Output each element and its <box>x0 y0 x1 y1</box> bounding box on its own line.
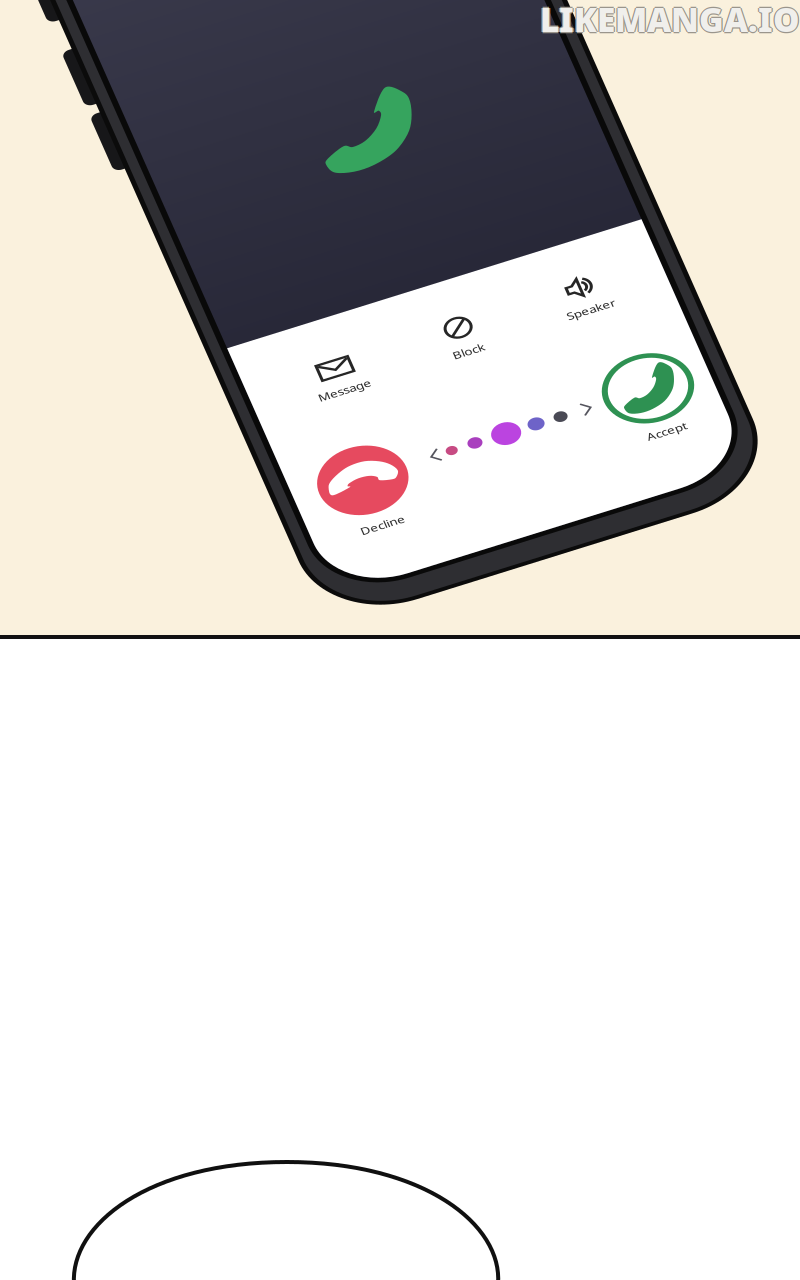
staticText: LIKEMANGA.IO <box>541 0 800 41</box>
staticText: LIKEMANGA.IO <box>539 0 799 41</box>
staticText: LIKEMANGA.IO <box>540 0 800 41</box>
button[interactable]: Message <box>93 565 223 643</box>
button[interactable]: Speaker <box>353 559 483 637</box>
staticText: LIKEMANGA.IO <box>540 0 800 40</box>
staticText: LIKEMANGA.IO <box>540 0 800 43</box>
button[interactable]: Block <box>223 562 353 640</box>
